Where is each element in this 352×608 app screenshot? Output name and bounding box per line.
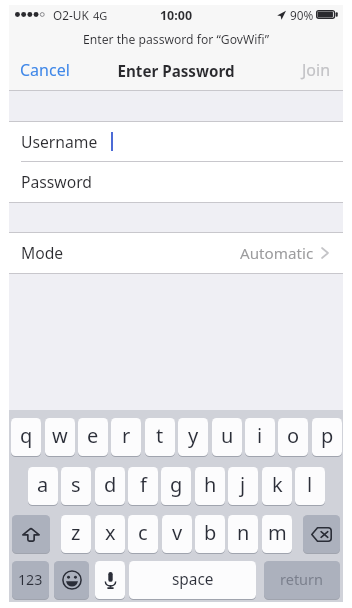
button[interactable]: Backspace [303,515,340,553]
staticText: O2-UK [53,7,352,23]
staticText: 10:00 [9,7,343,24]
button[interactable]: Shift [12,515,50,553]
button[interactable]: v [162,515,192,553]
staticText: l [307,471,313,498]
staticText: t [156,422,164,449]
button[interactable]: c [128,515,158,553]
staticText: d [104,471,117,498]
button[interactable]: z [61,515,91,553]
staticText: u [221,422,234,449]
staticText: c [138,519,148,546]
button[interactable]: o [278,418,308,456]
staticText: y [188,422,199,449]
button[interactable]: n [228,515,258,553]
button[interactable]: j [228,467,258,505]
staticText: 4G [93,8,352,23]
button[interactable]: x [95,515,125,553]
button[interactable]: h [195,467,225,505]
staticText: k [272,471,283,498]
button[interactable]: y [178,418,208,456]
staticText: f [140,471,147,498]
staticText: space [172,569,214,590]
staticText: p [321,422,334,449]
button[interactable]: s [61,467,91,505]
button[interactable]: 123 [12,561,49,599]
button[interactable]: Cancel [11,55,79,85]
button[interactable]: k [262,467,292,505]
button[interactable]: m [262,515,292,553]
button[interactable]: Username [9,122,343,162]
staticText: w [52,422,68,449]
staticText: i [257,422,263,449]
button[interactable]: u [212,418,242,456]
button[interactable]: w [45,418,75,456]
staticText: n [237,519,250,546]
button[interactable]: e [78,418,108,456]
staticText: z [71,519,81,546]
staticText: Automatic [240,243,314,264]
button[interactable]: Mode [9,233,343,273]
staticText: Password [21,171,321,192]
button[interactable]: q [11,418,41,456]
staticText: j [240,471,246,498]
button[interactable]: r [111,418,141,456]
staticText: 90% [290,7,352,23]
staticText: q [20,422,33,449]
staticText: Mode [21,242,321,263]
button[interactable]: space [129,561,256,599]
staticText: m [268,519,287,546]
staticText: return [280,569,324,589]
button[interactable]: i [245,418,275,456]
button[interactable]: Emoji [54,561,89,599]
staticText: h [204,471,217,498]
staticText: Cancel [20,59,70,81]
staticText: 123 [18,570,43,589]
staticText: e [87,422,99,449]
staticText: s [71,471,81,498]
staticText: b [204,519,217,546]
button[interactable]: Join [291,55,341,85]
staticText: a [37,471,49,498]
button[interactable]: p [312,418,342,456]
button[interactable]: d [95,467,125,505]
button[interactable]: return [264,561,340,599]
staticText: x [105,519,116,546]
staticText: o [287,422,300,449]
staticText: Join [302,59,331,81]
button[interactable]: t [145,418,175,456]
staticText: Enter Password [9,61,343,82]
button[interactable]: a [28,467,58,505]
button[interactable]: b [195,515,225,553]
staticText: r [122,422,131,449]
button[interactable]: Password [9,162,343,202]
staticText: g [170,471,183,498]
staticText: Enter the password for “GovWifi” [9,31,343,48]
button[interactable]: Dictation [95,561,125,599]
button[interactable]: g [161,467,191,505]
staticText: Username [21,131,321,152]
staticText: v [172,519,183,546]
button[interactable]: f [128,467,158,505]
button[interactable]: l [295,467,325,505]
